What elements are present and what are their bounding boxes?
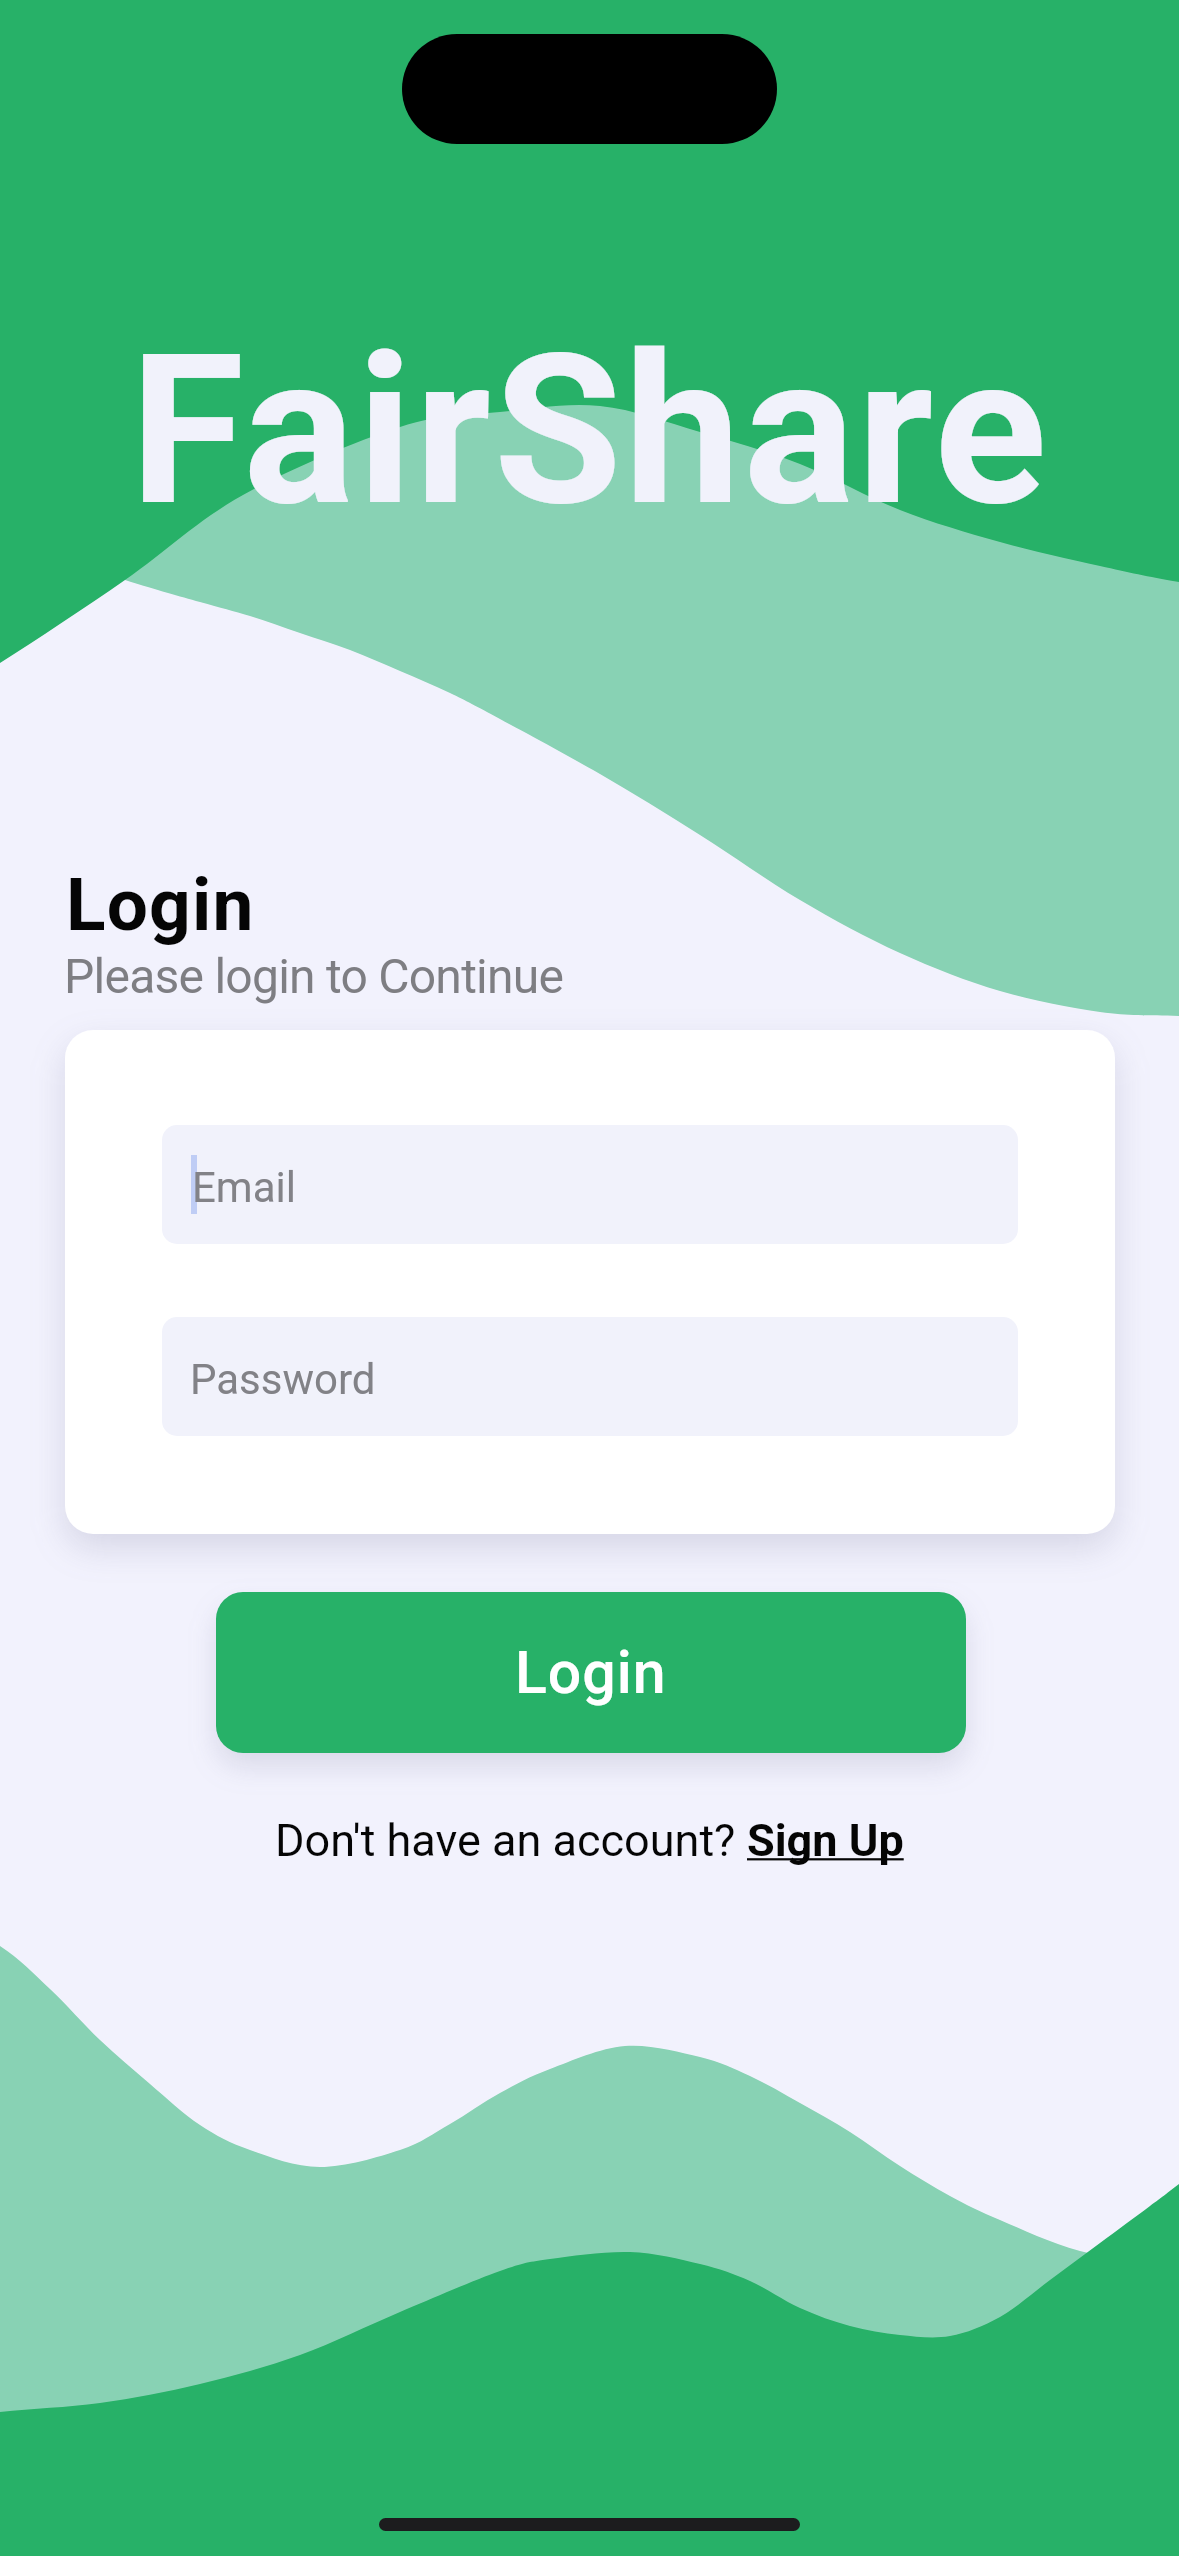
staticText: Login: [515, 1638, 667, 1707]
staticText: Login: [66, 862, 255, 948]
staticText: Password: [190, 1355, 376, 1404]
button[interactable]: Sign Up: [747, 1814, 904, 1867]
staticText: Don't have an account?: [275, 1814, 747, 1867]
staticText: Please login to Continue: [64, 948, 564, 1004]
button[interactable]: Login: [216, 1592, 966, 1753]
staticText: Sign Up: [747, 1814, 904, 1867]
staticText: FairShare: [130, 309, 1050, 553]
other: Home indicator: [379, 2518, 800, 2531]
button[interactable]: Password: [162, 1317, 1018, 1436]
staticText: Email: [192, 1163, 296, 1212]
button[interactable]: Email: [162, 1125, 1018, 1244]
